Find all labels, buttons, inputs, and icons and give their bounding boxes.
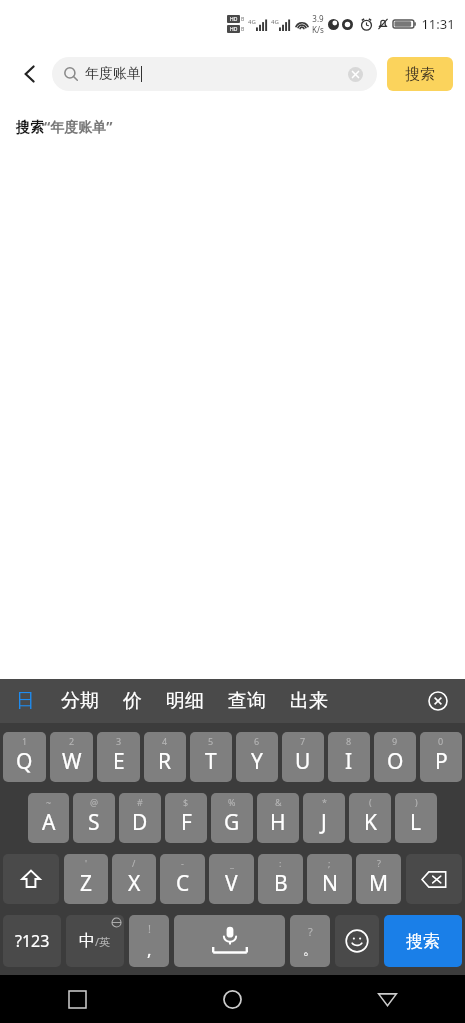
button[interactable]: Clear — [345, 64, 365, 84]
button[interactable]: ?123 — [3, 915, 61, 967]
staticText: N — [322, 869, 338, 898]
staticText: 年度账单 — [85, 65, 141, 83]
button[interactable]: 5 — [190, 732, 232, 782]
button[interactable]: 4 — [144, 732, 186, 782]
staticText: 出来 — [290, 689, 328, 713]
staticText: % — [228, 796, 236, 808]
staticText: 日 — [16, 689, 35, 713]
staticText: ( — [369, 796, 372, 808]
staticText: K/s — [312, 24, 324, 35]
staticText: 搜索“年度账单” — [16, 117, 113, 136]
button[interactable]: ) — [395, 793, 437, 843]
staticText: @ — [90, 796, 99, 808]
button[interactable]: Home — [155, 975, 310, 1023]
staticText: HD — [230, 16, 238, 23]
button[interactable]: 出来 — [286, 685, 332, 717]
staticText: O — [387, 747, 404, 776]
staticText: Q — [16, 747, 33, 776]
button[interactable]: ' — [64, 854, 108, 904]
staticText: 搜索 — [405, 65, 435, 84]
staticText: X — [128, 869, 141, 898]
button[interactable]: # — [119, 793, 161, 843]
button[interactable]: * — [303, 793, 345, 843]
staticText: : — [279, 857, 282, 869]
staticText: 明细 — [166, 689, 204, 713]
button[interactable]: ! — [129, 915, 169, 967]
button[interactable]: 7 — [282, 732, 324, 782]
staticText: ? — [377, 857, 381, 869]
staticText: Z — [80, 869, 93, 898]
staticText: T — [205, 747, 217, 776]
button[interactable]: & — [257, 793, 299, 843]
button[interactable]: 3 — [97, 732, 140, 782]
button[interactable]: 6 — [236, 732, 278, 782]
button[interactable]: Back — [310, 975, 465, 1023]
staticText: J — [321, 808, 327, 837]
staticText: I — [345, 747, 353, 776]
staticText: , — [147, 938, 152, 961]
staticText: B — [241, 26, 245, 33]
button[interactable]: 中 — [66, 915, 124, 967]
staticText: ?123 — [15, 930, 50, 952]
staticText: L — [410, 808, 422, 837]
staticText: # — [137, 796, 143, 808]
button[interactable]: 2 — [50, 732, 93, 782]
button[interactable]: Backspace — [406, 854, 462, 904]
staticText: E — [113, 747, 125, 776]
button[interactable]: % — [211, 793, 253, 843]
button[interactable]: ~ — [28, 793, 69, 843]
staticText: & — [275, 796, 282, 808]
button[interactable]: ? — [290, 915, 330, 967]
staticText: C — [176, 869, 190, 898]
button[interactable]: ( — [349, 793, 391, 843]
button[interactable]: : — [258, 854, 303, 904]
button[interactable]: 搜索“年度账单” — [0, 112, 465, 140]
staticText: 2 — [69, 735, 75, 747]
button[interactable]: 明细 — [162, 685, 208, 717]
button[interactable]: Emoji — [335, 915, 379, 967]
button[interactable]: @ — [73, 793, 115, 843]
button[interactable]: 1 — [3, 732, 46, 782]
staticText: R — [158, 747, 172, 776]
staticText: 8 — [346, 735, 352, 747]
button[interactable]: 9 — [374, 732, 416, 782]
button[interactable]: Close keyboard — [421, 684, 455, 718]
button[interactable]: Space — [174, 915, 285, 967]
staticText: M — [369, 869, 389, 898]
button[interactable]: Shift — [3, 854, 59, 904]
button[interactable]: Back — [12, 56, 48, 92]
staticText: ! — [148, 921, 151, 936]
button[interactable]: ; — [307, 854, 352, 904]
button[interactable]: 0 — [420, 732, 462, 782]
button[interactable]: 分期 — [57, 685, 103, 717]
staticText: 4 — [162, 735, 168, 747]
staticText: / — [132, 857, 136, 869]
staticText: 分期 — [61, 689, 99, 713]
staticText: 4G — [248, 18, 256, 26]
button[interactable]: / — [112, 854, 156, 904]
button[interactable]: Recents — [0, 975, 155, 1023]
staticText: U — [295, 747, 311, 776]
button[interactable]: 搜索 — [387, 57, 453, 91]
staticText: H — [270, 808, 286, 837]
staticText: 3 — [116, 735, 122, 747]
button[interactable]: 查询 — [224, 685, 270, 717]
button[interactable]: 年度账单 — [52, 57, 377, 91]
button[interactable]: 8 — [328, 732, 370, 782]
staticText: V — [225, 869, 238, 898]
button[interactable]: _ — [209, 854, 254, 904]
staticText: HD — [230, 26, 238, 33]
button[interactable]: 日 — [12, 685, 39, 717]
staticText: 查询 — [228, 689, 266, 713]
staticText: B — [274, 869, 288, 898]
staticText: - — [181, 857, 184, 869]
button[interactable]: $ — [165, 793, 207, 843]
button[interactable]: 搜索 — [384, 915, 462, 967]
staticText: F — [181, 808, 192, 837]
staticText: K — [364, 808, 377, 837]
staticText: D — [132, 808, 148, 837]
button[interactable]: ? — [356, 854, 401, 904]
button[interactable]: 价 — [119, 685, 146, 717]
staticText: ) — [415, 796, 418, 808]
button[interactable]: - — [160, 854, 205, 904]
